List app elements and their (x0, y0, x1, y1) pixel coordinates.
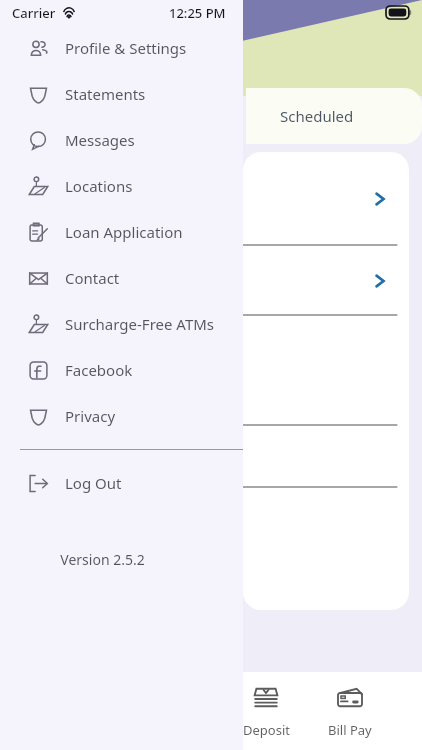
button[interactable]: Surcharge-Free ATMs (0, 301, 243, 347)
other: Deposit (251, 684, 281, 714)
staticText: Facebook (65, 360, 133, 380)
button[interactable]: Profile & Settings (0, 25, 243, 71)
other: Open details (373, 192, 387, 206)
staticText: Loan Application (65, 222, 183, 242)
button[interactable]: Deposit (224, 678, 308, 745)
button[interactable] (243, 316, 409, 426)
staticText: Deposit (243, 721, 290, 739)
staticText: Locations (65, 176, 133, 196)
staticText: Privacy (65, 406, 116, 426)
other: Bill Pay (335, 684, 365, 714)
button[interactable]: Contact (0, 255, 243, 301)
button[interactable]: Open details (243, 246, 409, 316)
other: Open details (373, 274, 387, 288)
button[interactable]: Facebook (0, 347, 243, 393)
button[interactable]: Privacy (0, 393, 243, 439)
button[interactable]: Scheduled (246, 88, 422, 144)
staticText: Messages (65, 130, 135, 150)
button[interactable] (243, 426, 409, 488)
staticText: Version 2.5.2 (0, 550, 205, 569)
button[interactable]: Loan Application (0, 209, 243, 255)
button[interactable]: Locations (0, 163, 243, 209)
staticText: Carrier (12, 4, 56, 22)
staticText: Contact (65, 268, 120, 288)
button[interactable]: Open details (243, 152, 409, 246)
button[interactable]: Bill Pay (308, 678, 392, 745)
staticText: Profile & Settings (65, 38, 187, 58)
button[interactable]: Statements (0, 71, 243, 117)
staticText: Surcharge-Free ATMs (65, 314, 215, 334)
staticText: Log Out (65, 473, 122, 493)
staticText: 12:25 PM (169, 4, 226, 22)
button[interactable]: Messages (0, 117, 243, 163)
staticText: Scheduled (280, 106, 354, 126)
other: Battery full (386, 6, 412, 19)
button[interactable]: Log Out (0, 460, 243, 506)
staticText: Bill Pay (328, 721, 372, 739)
staticText: Statements (65, 84, 146, 104)
